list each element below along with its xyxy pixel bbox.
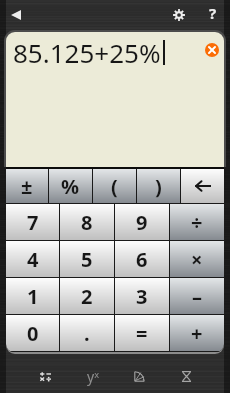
staticText: 9 (136, 209, 148, 236)
staticText: – (192, 283, 202, 310)
staticText: ÷ (191, 209, 203, 236)
button[interactable]: Backspace (181, 169, 224, 203)
button[interactable]: ) (137, 169, 180, 203)
button[interactable]: 6 (115, 241, 169, 277)
staticText: 7 (27, 209, 39, 236)
staticText: + (191, 320, 203, 347)
staticText: % (61, 173, 80, 200)
button[interactable]: Help (201, 1, 224, 24)
staticText: ± (21, 173, 33, 200)
staticText: 1 (27, 283, 39, 310)
button[interactable]: 4 (6, 241, 59, 277)
staticText: 8 (81, 209, 93, 236)
staticText: ) (155, 173, 162, 200)
button[interactable]: – (170, 278, 224, 314)
button[interactable]: 0 (6, 315, 59, 351)
button[interactable]: ( (93, 169, 136, 203)
staticText: = (136, 320, 148, 347)
button[interactable]: 2 (60, 278, 114, 314)
staticText: 2 (81, 283, 93, 310)
button[interactable]: = (115, 315, 169, 351)
button[interactable]: 9 (115, 204, 169, 240)
button[interactable]: + (170, 315, 224, 351)
button[interactable]: Power (69, 358, 116, 393)
staticText: 3 (136, 283, 148, 310)
staticText: ( (111, 173, 118, 200)
button[interactable]: Back (3, 2, 28, 27)
button[interactable]: ÷ (170, 204, 224, 240)
button[interactable]: . (60, 315, 114, 351)
staticText: 6 (136, 246, 148, 273)
staticText: 85.125+25% (13, 35, 161, 70)
button[interactable]: 1 (6, 278, 59, 314)
button[interactable]: ± (6, 169, 48, 203)
button[interactable]: 3 (115, 278, 169, 314)
staticText: × (191, 246, 203, 273)
button[interactable]: 5 (60, 241, 114, 277)
staticText: ? (209, 3, 217, 23)
staticText: 4 (27, 246, 39, 273)
button[interactable]: 7 (6, 204, 59, 240)
button[interactable]: Trigonometry (116, 358, 163, 393)
button[interactable]: Clear (205, 43, 219, 57)
button[interactable]: Settings (167, 3, 190, 26)
button[interactable]: % (49, 169, 92, 203)
button[interactable]: × (170, 241, 224, 277)
button[interactable]: 8 (60, 204, 114, 240)
button[interactable]: History (163, 358, 210, 393)
staticText: yˣ (87, 367, 99, 386)
staticText: 5 (81, 246, 93, 273)
staticText: . (84, 320, 90, 347)
staticText: 0 (27, 320, 39, 347)
button[interactable]: Basic operations (22, 358, 69, 393)
